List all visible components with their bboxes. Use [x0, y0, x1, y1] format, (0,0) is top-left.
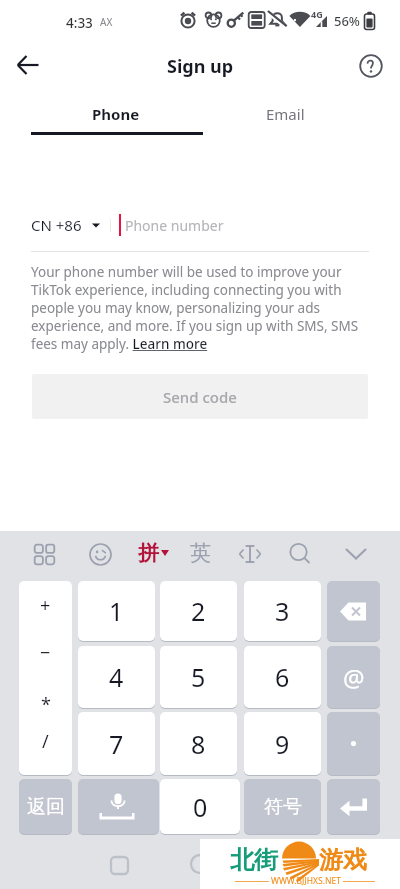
button[interactable]: 返回: [19, 779, 72, 834]
staticText: 0: [193, 790, 208, 824]
button[interactable]: 英: [190, 539, 211, 567]
staticText: Sign up: [167, 54, 234, 79]
button[interactable]: 1: [78, 581, 155, 641]
button[interactable]: 9: [244, 712, 321, 775]
staticText: 符号: [264, 795, 302, 819]
staticText: WWW.BJJHXS.NET: [271, 875, 341, 887]
staticText: AX: [100, 15, 113, 29]
button[interactable]: 5: [160, 646, 237, 708]
button[interactable]: Recent apps: [104, 850, 134, 880]
button[interactable]: 8: [160, 712, 237, 775]
button[interactable]: 6: [244, 646, 321, 708]
button[interactable]: [19, 581, 72, 775]
staticText: 3: [275, 594, 290, 628]
staticText: Send code: [163, 387, 237, 407]
button[interactable]: 符号: [244, 779, 321, 834]
button[interactable]: 4: [78, 646, 155, 708]
staticText: Phone: [92, 104, 140, 124]
button[interactable]: Emoji: [86, 540, 114, 568]
button[interactable]: Phone: [16, 96, 216, 132]
staticText: 7: [109, 727, 124, 761]
staticText: 9: [275, 727, 290, 761]
button[interactable]: 7: [78, 712, 155, 775]
staticText: /: [42, 729, 49, 749]
staticText: +: [40, 593, 51, 613]
staticText: 拼: [138, 540, 159, 566]
staticText: 6: [275, 660, 290, 694]
staticText: *: [41, 692, 51, 712]
staticText: 4:33: [66, 14, 93, 30]
button[interactable]: Email: [185, 96, 385, 132]
button[interactable]: [327, 712, 380, 775]
staticText: 5: [191, 660, 206, 694]
button[interactable]: Send code: [32, 374, 368, 419]
button[interactable]: [78, 779, 159, 834]
staticText: Email: [266, 104, 305, 124]
button[interactable]: Search: [286, 540, 314, 568]
button[interactable]: [327, 779, 380, 834]
staticText: −: [40, 640, 51, 660]
staticText: 1: [109, 594, 124, 628]
staticText: 英: [190, 540, 211, 566]
staticText: 游戏: [319, 845, 367, 875]
button[interactable]: Keyboard layouts: [30, 540, 58, 568]
button[interactable]: Home: [185, 849, 215, 879]
button[interactable]: Back: [10, 47, 46, 83]
staticText: 4G: [311, 8, 323, 20]
staticText: 返回: [27, 795, 65, 819]
button[interactable]: Help: [355, 50, 386, 81]
button[interactable]: 0: [160, 779, 240, 834]
button[interactable]: 2: [160, 581, 237, 641]
staticText: @: [343, 661, 365, 694]
button[interactable]: @: [327, 646, 380, 708]
button[interactable]: 3: [244, 581, 321, 641]
staticText: 8: [191, 727, 206, 761]
staticText: CN +86: [31, 215, 82, 235]
staticText: 56%: [334, 12, 360, 30]
button[interactable]: Hide keyboard: [342, 540, 370, 568]
button[interactable]: Move cursor: [236, 540, 264, 568]
button[interactable]: CN +86: [31, 208, 100, 242]
staticText: Phone number: [125, 216, 224, 235]
staticText: 北街: [230, 845, 278, 875]
button[interactable]: 拼: [138, 539, 169, 567]
staticText: 4: [109, 660, 124, 694]
button[interactable]: [327, 581, 380, 641]
staticText: Your phone number will be used to improv…: [31, 263, 369, 353]
staticText: 2: [191, 594, 206, 628]
